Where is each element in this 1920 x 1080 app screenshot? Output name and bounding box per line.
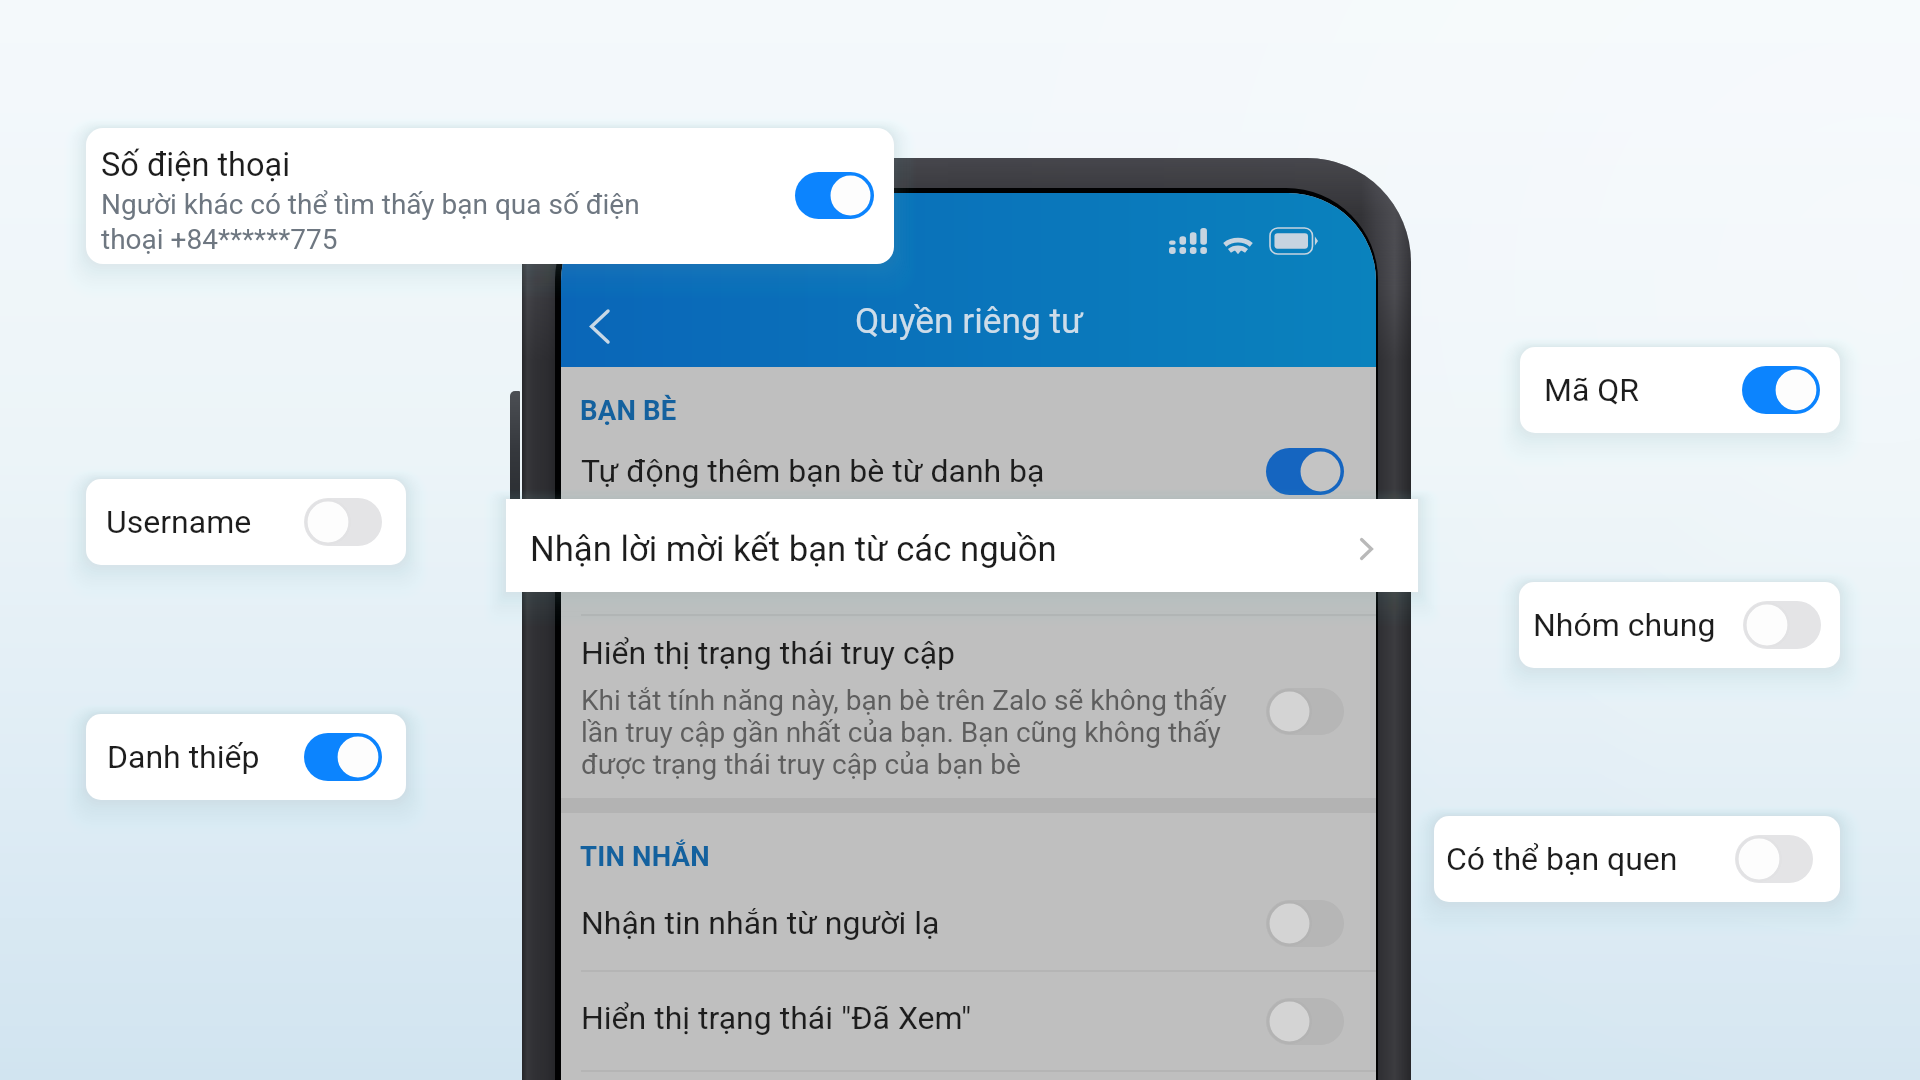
button[interactable]: Danh thiếp: [86, 714, 406, 800]
staticText: TIN NHẮN: [580, 840, 710, 872]
button[interactable]: Có thể bạn quen: [1434, 816, 1840, 902]
staticText: Nhận tin nhắn từ người lạ: [581, 904, 940, 942]
staticText: Hiển thị trạng thái truy cập: [581, 634, 956, 672]
staticText: Username: [106, 503, 252, 541]
staticText: Hiển thị trạng thái "Đã Xem": [581, 999, 972, 1037]
staticText: Người khác có thể tìm thấy bạn qua số đi…: [101, 188, 640, 256]
button[interactable]: Tự động thêm bạn bè từ danh bạ: [561, 429, 1376, 513]
staticText: Danh thiếp: [107, 738, 260, 776]
button[interactable]: Nhận lời mời kết bạn từ các nguồn: [506, 499, 1418, 592]
button[interactable]: Username: [86, 479, 406, 565]
button[interactable]: Hiển thị trạng thái "Đã Xem": [561, 972, 1376, 1070]
staticText: Nhận lời mời kết bạn từ các nguồn: [530, 529, 1057, 570]
staticText: Số điện thoại: [101, 146, 291, 184]
staticText: Có thể bạn quen: [1446, 840, 1678, 878]
button[interactable]: Số điện thoại: [86, 128, 894, 264]
staticText: BẠN BÈ: [580, 394, 677, 426]
staticText: Nhóm chung: [1533, 606, 1716, 644]
staticText: Mã QR: [1544, 371, 1640, 409]
other: Quay lại: [590, 311, 609, 342]
button[interactable]: Mã QR: [1520, 347, 1840, 433]
other: Mở: [1360, 538, 1373, 560]
staticText: Tự động thêm bạn bè từ danh bạ: [581, 452, 1045, 490]
button[interactable]: Nhận tin nhắn từ người lạ: [561, 876, 1376, 970]
staticText: Quyền riêng tư: [855, 300, 1083, 341]
button[interactable]: Nhóm chung: [1519, 582, 1840, 668]
staticText: Khi tắt tính năng này, bạn bè trên Zalo …: [581, 684, 1227, 781]
